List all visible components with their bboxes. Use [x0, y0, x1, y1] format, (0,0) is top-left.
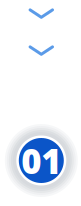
- staticText: 01: [21, 137, 61, 183]
